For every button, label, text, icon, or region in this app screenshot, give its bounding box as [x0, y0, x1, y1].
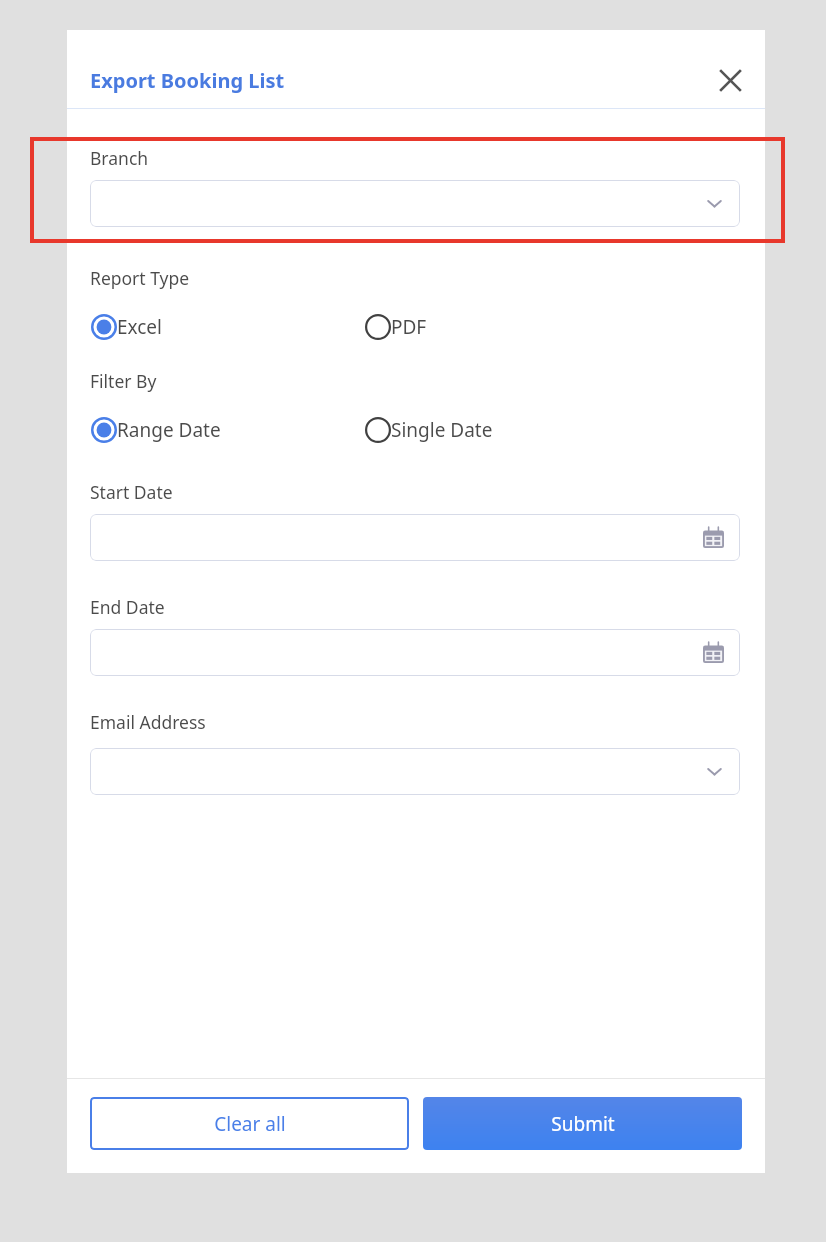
- staticText: Report Type: [90, 266, 190, 290]
- staticText: Email Address: [90, 710, 206, 734]
- staticText: End Date: [90, 595, 165, 619]
- button[interactable]: Branch: [90, 180, 740, 227]
- staticText: Branch: [90, 146, 149, 170]
- button[interactable]: PDF: [365, 311, 427, 343]
- button[interactable]: Close: [708, 58, 752, 102]
- button[interactable]: Start Date: [90, 514, 740, 561]
- button[interactable]: Range Date: [91, 414, 221, 446]
- staticText: Excel: [117, 314, 162, 340]
- staticText: Clear all: [214, 1111, 286, 1137]
- staticText: Export Booking List: [90, 67, 285, 94]
- button[interactable]: End Date: [90, 629, 740, 676]
- button[interactable]: Excel: [91, 311, 162, 343]
- staticText: Start Date: [90, 480, 173, 504]
- staticText: Single Date: [391, 417, 493, 443]
- button[interactable]: Submit: [423, 1097, 742, 1150]
- button[interactable]: Single Date: [365, 414, 493, 446]
- staticText: Submit: [551, 1111, 615, 1137]
- button[interactable]: Clear all: [90, 1097, 409, 1150]
- staticText: Range Date: [117, 417, 221, 443]
- staticText: Filter By: [90, 369, 157, 393]
- staticText: PDF: [391, 314, 427, 340]
- button[interactable]: Email Address: [90, 748, 740, 795]
